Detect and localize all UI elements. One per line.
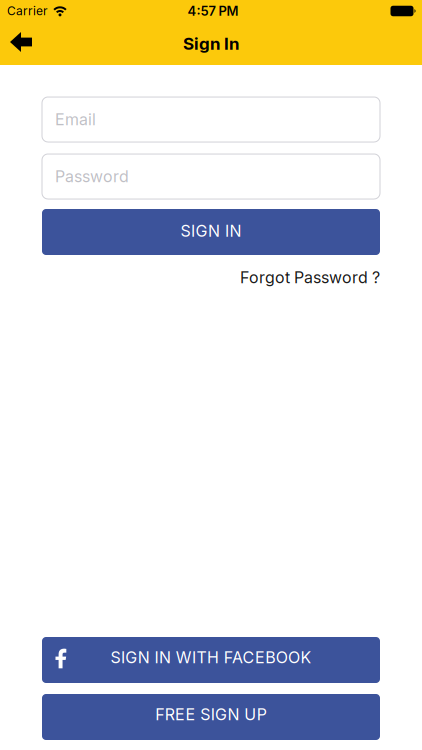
- staticText: Forgot Password ?: [240, 268, 380, 287]
- button[interactable]: Email: [42, 97, 380, 142]
- button[interactable]: Password: [42, 154, 380, 199]
- button[interactable]: SIGN IN WITH FACEBOOK: [42, 637, 380, 683]
- staticText: Password: [55, 167, 129, 186]
- staticText: Email: [55, 110, 96, 129]
- staticText: Carrier: [7, 4, 48, 18]
- staticText: Sign In: [183, 33, 239, 54]
- staticText: 4:57 PM: [187, 3, 238, 19]
- staticText: FREE SIGN UP: [155, 705, 267, 724]
- button[interactable]: FREE SIGN UP: [42, 694, 380, 740]
- staticText: SIGN IN: [180, 222, 241, 240]
- staticText: SIGN IN WITH FACEBOOK: [110, 648, 311, 667]
- button[interactable]: Back: [0, 22, 44, 65]
- button[interactable]: SIGN IN: [42, 209, 380, 255]
- button[interactable]: Forgot Password ?: [240, 270, 380, 289]
